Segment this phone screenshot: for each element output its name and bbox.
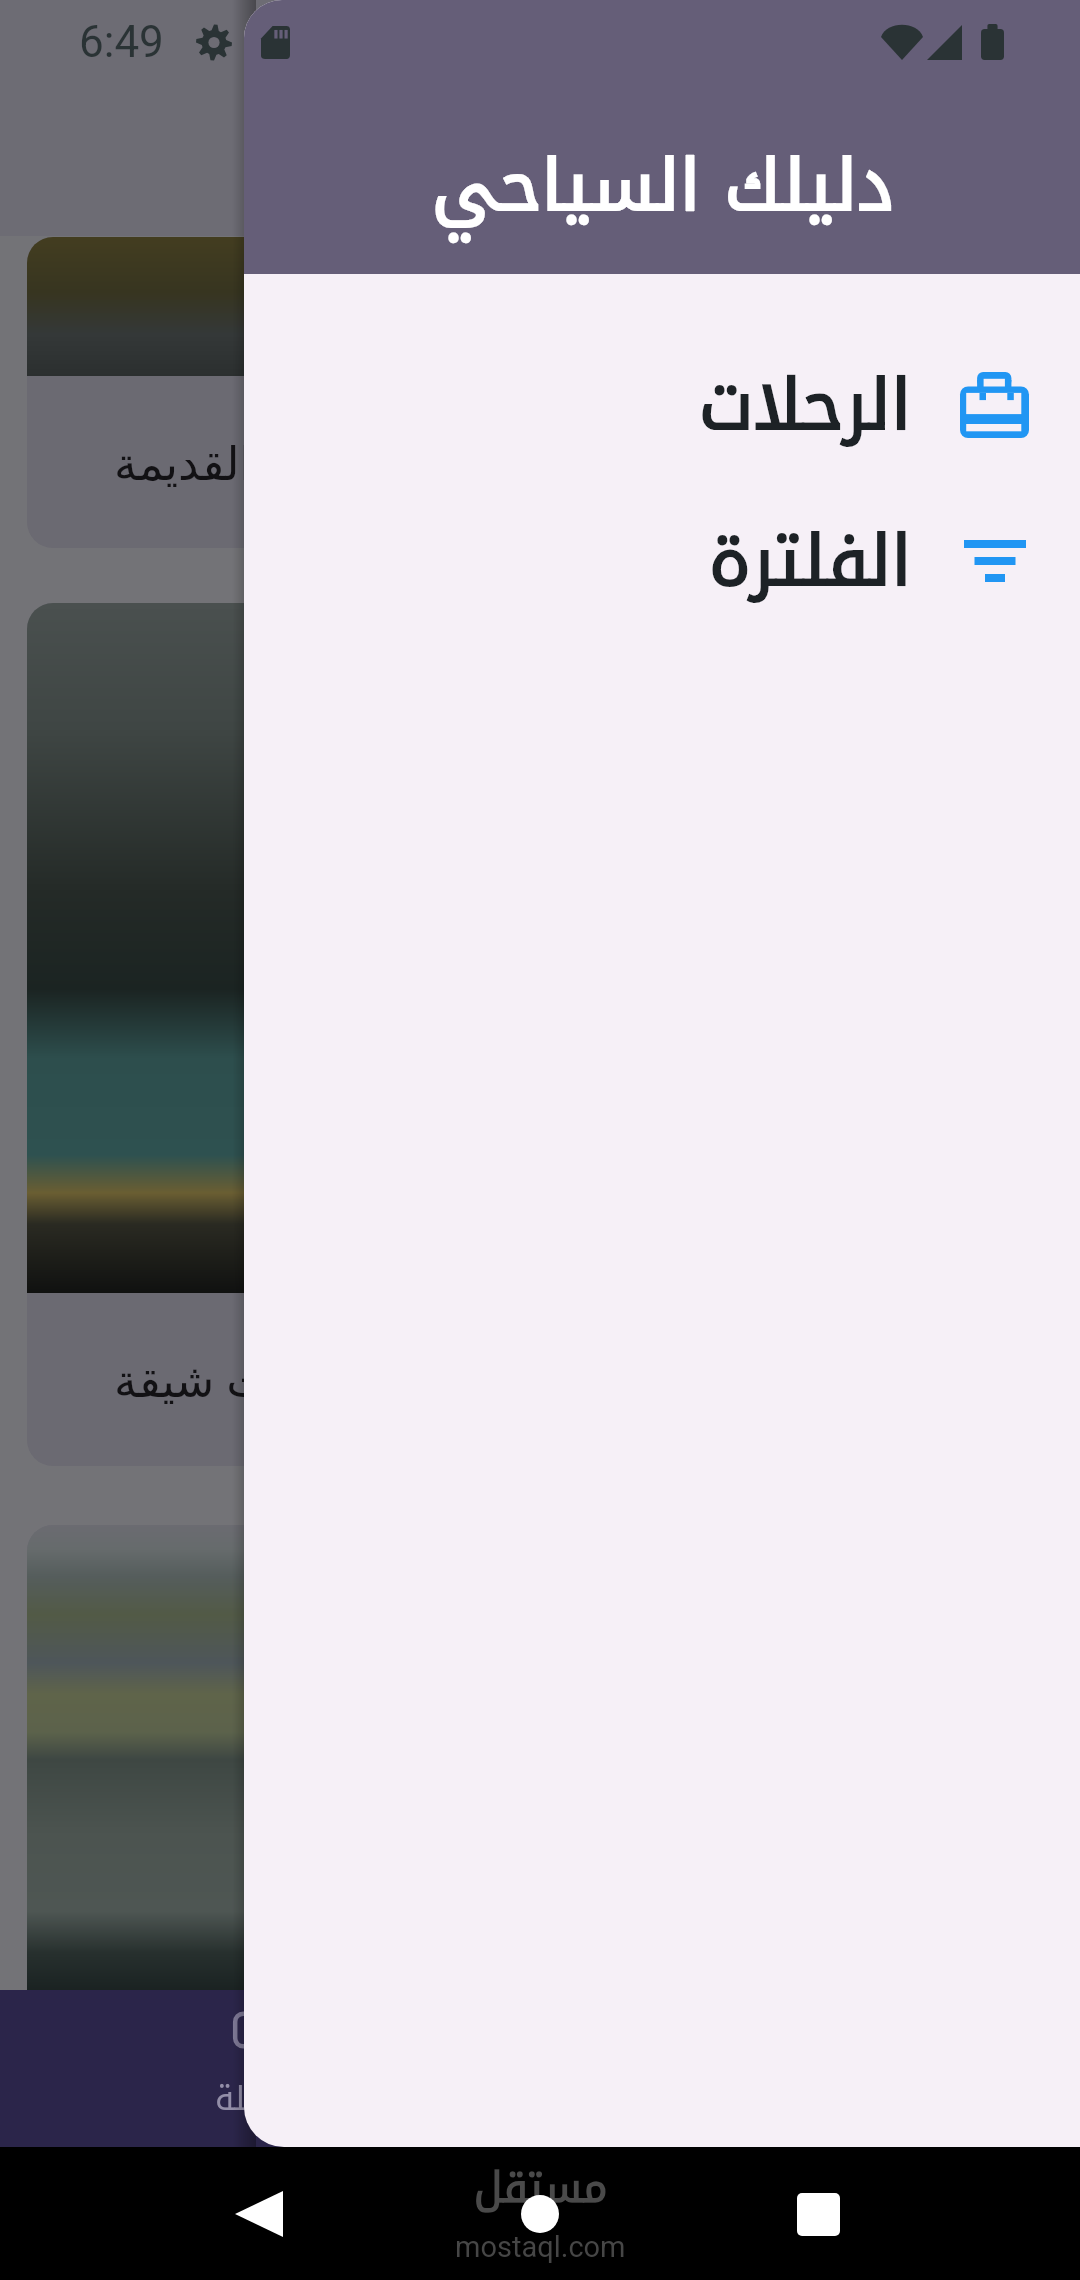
staticText: الرحلة <box>215 2068 297 2131</box>
button[interactable]: الرحلة <box>111 2006 401 2131</box>
other: Home <box>521 2195 559 2233</box>
button[interactable]: Back <box>211 2166 307 2262</box>
staticText: انشطة ترفيهية ومغامرات شيقة <box>114 1348 703 1411</box>
staticText: 6:49 <box>79 16 164 68</box>
other: الرحلات <box>960 372 1029 438</box>
staticText: mostaql.com <box>455 2230 626 2264</box>
other: الفلترة <box>964 540 1026 582</box>
other: Recents <box>797 2193 840 2236</box>
staticText: الفلترة <box>709 495 912 628</box>
button[interactable]: رحلة الى الطبيعة الخلابة <box>27 1525 1053 2280</box>
button[interactable]: استكشاف معالم المدينة القديمة <box>27 237 1053 548</box>
button[interactable]: Recents <box>770 2166 866 2262</box>
button[interactable]: انشطة ترفيهية ومغامرات شيقة <box>27 603 1053 1466</box>
staticText: استكشاف معالم المدينة القديمة <box>114 431 716 494</box>
button[interactable]: الفلترة <box>244 485 1080 637</box>
staticText: مستقل <box>474 2148 608 2228</box>
button[interactable]: الرحلات <box>244 329 1080 481</box>
other: Back <box>235 2190 283 2238</box>
button[interactable]: Home <box>492 2166 588 2262</box>
staticText: الرحلات <box>699 339 912 472</box>
staticText: دليلك السياحي <box>432 119 894 254</box>
